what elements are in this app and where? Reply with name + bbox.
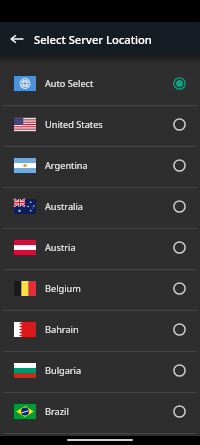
staticText: Select Server Location — [34, 32, 152, 47]
button[interactable]: Australia — [0, 188, 200, 228]
staticText: Bahrain — [45, 323, 173, 336]
staticText: Belgium — [45, 282, 173, 295]
button[interactable]: Argentina — [0, 147, 200, 187]
staticText: United States — [45, 118, 173, 131]
staticText: Brazil — [45, 405, 173, 418]
staticText: Auto Select — [45, 77, 173, 90]
button[interactable]: Bahrain — [0, 311, 200, 351]
button[interactable]: Auto Select — [0, 65, 200, 105]
button[interactable]: Austria — [0, 229, 200, 269]
button[interactable]: Bulgaria — [0, 352, 200, 392]
button[interactable]: Brazil — [0, 393, 200, 433]
staticText: Bulgaria — [45, 364, 173, 377]
button[interactable]: Back — [5, 27, 29, 51]
staticText: Austria — [45, 241, 173, 254]
button[interactable]: United States — [0, 106, 200, 146]
button[interactable]: Belgium — [0, 270, 200, 310]
staticText: Australia — [45, 200, 173, 213]
staticText: Argentina — [45, 159, 173, 172]
